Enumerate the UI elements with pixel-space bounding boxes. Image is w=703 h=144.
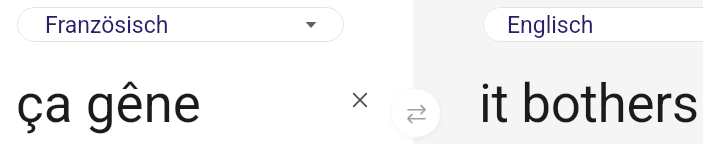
staticText: it bothers <box>479 73 699 135</box>
staticText: Englisch <box>507 12 594 39</box>
staticText: Französisch <box>45 12 169 39</box>
button[interactable]: Französisch <box>17 7 344 42</box>
button[interactable]: Englisch <box>483 7 703 42</box>
staticText: ça gêne <box>16 73 201 135</box>
button[interactable]: Clear text <box>342 81 378 117</box>
button[interactable]: Swap languages <box>392 89 440 137</box>
